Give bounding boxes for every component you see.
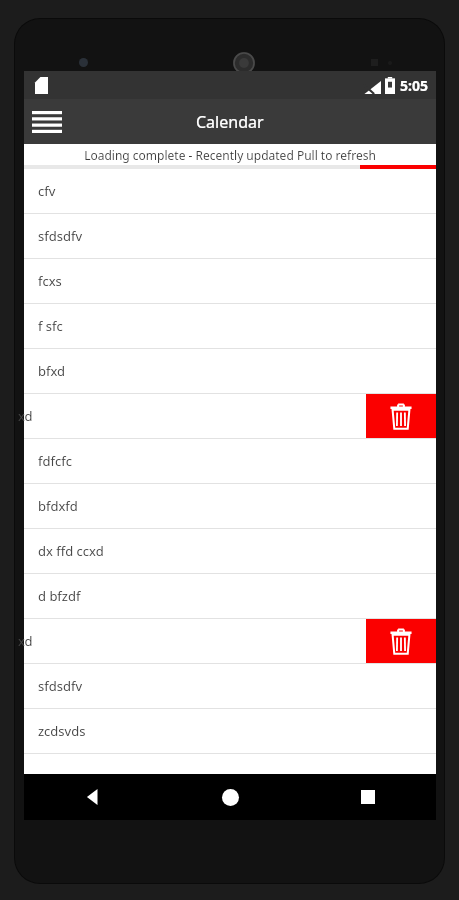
button[interactable]: sfdsdfv (24, 664, 436, 708)
button[interactable]: d bfzdf (24, 574, 436, 618)
staticText: d bfzdf (38, 587, 81, 605)
staticText: bfdxfd (38, 497, 78, 515)
staticText: Calendar (196, 111, 264, 133)
button[interactable]: Open navigation drawer (24, 99, 70, 144)
staticText: cfv (38, 182, 56, 200)
staticText: fcxs (38, 272, 62, 290)
button[interactable]: dx ffd ccxd (24, 529, 436, 573)
staticText: xd (18, 407, 33, 425)
button[interactable]: Home (162, 774, 299, 820)
button[interactable]: Back (24, 774, 162, 820)
staticText: fdfcfc (38, 452, 72, 470)
staticText: 5:05 (400, 76, 428, 95)
button[interactable]: Delete (366, 619, 436, 663)
staticText: zcdsvds (38, 722, 86, 740)
button[interactable]: f sfc (24, 304, 436, 348)
button[interactable]: fcxs (24, 259, 436, 303)
staticText: bfxd (38, 362, 66, 380)
staticText: Loading complete - Recently updated Pull… (84, 147, 376, 163)
staticText: xd (18, 632, 33, 650)
staticText: sfdsdfv (38, 227, 82, 245)
button[interactable]: fdfcfc (24, 439, 436, 483)
staticText: dx ffd ccxd (38, 542, 104, 560)
button[interactable]: bfxd (24, 349, 436, 393)
button[interactable]: bfdxfd (24, 484, 436, 528)
button[interactable]: cfv (24, 169, 436, 213)
button[interactable]: Recent apps (299, 774, 436, 820)
staticText: f sfc (38, 317, 63, 335)
staticText: sfdsdfv (38, 677, 82, 695)
button[interactable]: sfdsdfv (24, 214, 436, 258)
button[interactable]: Delete (366, 394, 436, 438)
button[interactable]: xd (24, 394, 436, 438)
button[interactable]: zcdsvds (24, 709, 436, 753)
button[interactable]: xd (24, 619, 436, 663)
